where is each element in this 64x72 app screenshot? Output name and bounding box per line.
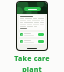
- button[interactable]: Status: [19, 39, 45, 44]
- button[interactable]: Status: [19, 32, 45, 37]
- button[interactable]: [19, 15, 45, 30]
- staticText: plant: [22, 65, 42, 72]
- button[interactable]: Status: [38, 40, 44, 43]
- staticText: Take care: [14, 54, 50, 64]
- button[interactable]: Get started: [24, 7, 41, 11]
- button[interactable]: Status: [38, 33, 44, 36]
